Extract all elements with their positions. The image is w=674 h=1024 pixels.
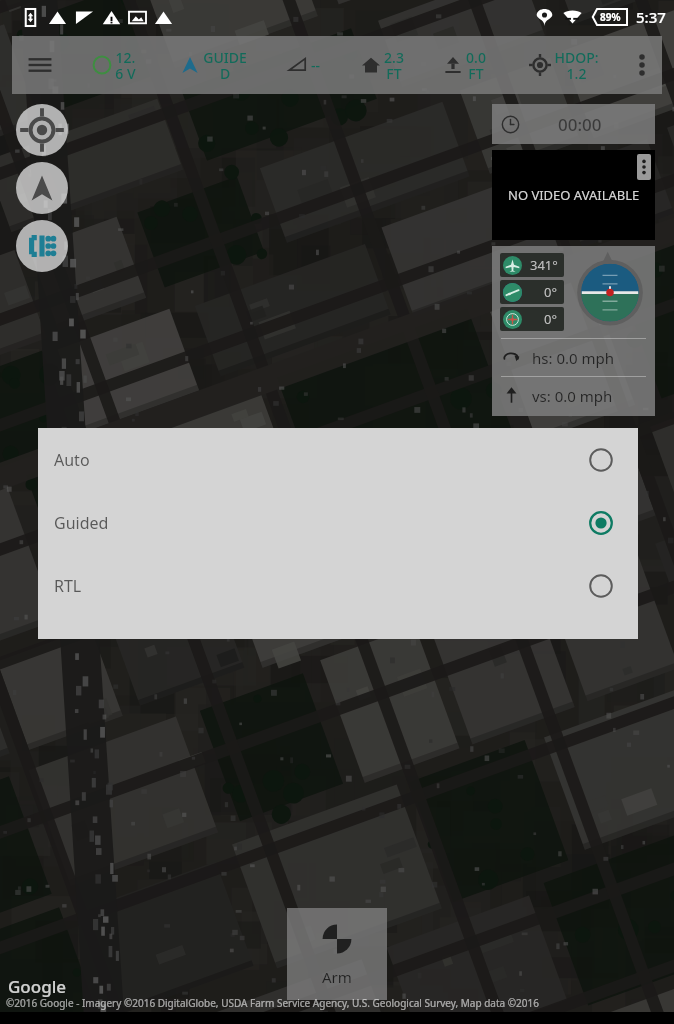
staticText: 00:00 <box>558 113 602 136</box>
button[interactable]: hs: 0.0 mph <box>492 339 655 376</box>
button[interactable]: 0° <box>500 307 564 331</box>
staticText: Guided <box>54 512 109 534</box>
staticText: RTL <box>54 575 82 597</box>
button[interactable]: 00:00 <box>492 104 655 144</box>
button[interactable]: 0° <box>500 280 564 304</box>
staticText: 12. 6 V <box>115 48 136 83</box>
staticText: hs: 0.0 mph <box>532 348 614 368</box>
staticText: Google <box>8 975 67 998</box>
button[interactable]: Open navigation menu <box>12 36 68 94</box>
staticText: 5:37 <box>636 7 666 27</box>
staticText: 0.0 FT <box>466 48 486 83</box>
button[interactable]: Video options <box>637 154 651 180</box>
button[interactable]: More options <box>622 36 662 94</box>
button[interactable]: Attitude indicator <box>574 253 646 325</box>
button[interactable]: HDOP: 1.2 <box>505 36 622 94</box>
staticText: 2.3 FT <box>384 48 404 83</box>
staticText: GUIDE D <box>203 48 247 83</box>
button[interactable]: 0.0 FT <box>423 36 505 94</box>
button[interactable]: My location <box>16 104 68 156</box>
button[interactable]: Map layers <box>16 220 68 272</box>
button[interactable]: -- <box>267 36 341 94</box>
button[interactable]: GUIDE D <box>159 36 267 94</box>
button[interactable]: Center on vehicle <box>16 162 68 214</box>
button[interactable]: Auto <box>38 428 638 491</box>
staticText: HDOP: 1.2 <box>554 48 599 83</box>
staticText: 0° <box>544 283 558 301</box>
staticText: ©2016 Google - Imagery ©2016 DigitalGlob… <box>6 996 539 1010</box>
staticText: 341° <box>530 256 558 274</box>
button[interactable]: RTL <box>38 554 638 617</box>
staticText: Auto <box>54 449 90 471</box>
button[interactable]: Arm <box>287 908 387 1000</box>
button[interactable]: 2.3 FT <box>341 36 423 94</box>
button[interactable]: vs: 0.0 mph <box>492 377 655 414</box>
staticText: -- <box>311 56 320 75</box>
staticText: NO VIDEO AVAILABLE <box>508 186 640 204</box>
staticText: vs: 0.0 mph <box>532 386 613 406</box>
button[interactable]: 341° <box>500 253 564 277</box>
button[interactable]: NO VIDEO AVAILABLE <box>492 150 655 240</box>
staticText: Arm <box>322 967 352 987</box>
button[interactable]: 12. 6 V <box>68 36 159 94</box>
button[interactable]: Guided <box>38 491 638 554</box>
staticText: 0° <box>544 310 558 328</box>
staticText: 89% <box>600 10 621 24</box>
